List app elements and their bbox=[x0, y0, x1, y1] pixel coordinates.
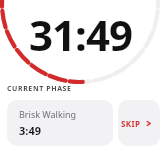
staticText: CURRENT PHASE bbox=[7, 84, 72, 94]
staticText: SKIP bbox=[121, 118, 141, 129]
staticText: 3:49 bbox=[19, 123, 41, 138]
staticText: Brisk Walking bbox=[19, 108, 77, 120]
button[interactable]: Skip phase bbox=[118, 100, 160, 146]
staticText: 31:49 bbox=[29, 6, 132, 63]
button[interactable]: Brisk Walking bbox=[7, 100, 113, 146]
